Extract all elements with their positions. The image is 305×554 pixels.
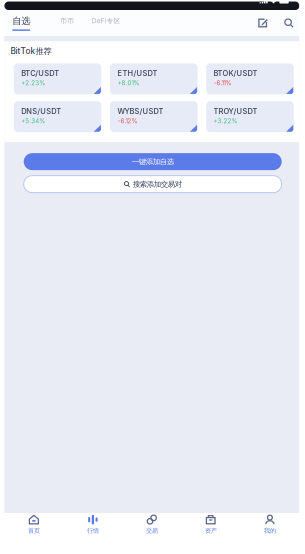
staticText: BTOK/USDT [214,69,258,78]
button[interactable]: 编辑自选 [253,13,273,33]
staticText: ETH/USDT [117,69,157,78]
staticText: 币币 [60,17,74,25]
staticText: 行情 [87,527,99,535]
staticText: +3.22% [214,117,238,125]
staticText: BitTok推荐 [11,46,52,57]
button[interactable]: 币币 [60,11,74,35]
button[interactable]: WYBS/USDT [110,101,197,132]
staticText: TROY/USDT [214,107,258,116]
staticText: +5.34% [21,117,45,125]
button[interactable]: ETH/USDT [110,63,197,94]
staticText: -6.12% [117,117,137,125]
button[interactable]: 搜索添加交易对 [24,176,282,193]
button[interactable]: 自选 [12,11,30,35]
staticText: 搜索添加交易对 [133,179,182,189]
staticText: -6.11% [214,79,232,87]
button[interactable]: 行情 [63,513,122,536]
button[interactable]: 我的 [240,513,299,536]
button[interactable]: 首页 [4,513,63,536]
button[interactable]: BTOK/USDT [206,63,294,94]
button[interactable]: 资产 [181,513,240,536]
staticText: 资产 [205,527,217,535]
staticText: 交易 [146,527,158,535]
staticText: 一键添加自选 [132,157,174,166]
staticText: WYBS/USDT [117,107,163,116]
button[interactable]: 一键添加自选 [24,153,282,170]
staticText: DeFi专区 [91,17,120,25]
staticText: BTC/USDT [21,69,59,78]
staticText: DNS/USDT [21,107,61,116]
button[interactable]: 交易 [122,513,181,536]
button[interactable]: DNS/USDT [14,101,101,132]
staticText: 我的 [264,527,276,535]
staticText: 首页 [28,527,40,535]
button[interactable]: DeFi专区 [91,11,120,35]
button[interactable]: 搜索 [279,13,299,33]
staticText: +2.23% [21,79,45,87]
button[interactable]: TROY/USDT [206,101,294,132]
button[interactable]: BTC/USDT [14,63,101,94]
staticText: +8.01% [117,79,139,87]
staticText: 自选 [12,15,30,27]
